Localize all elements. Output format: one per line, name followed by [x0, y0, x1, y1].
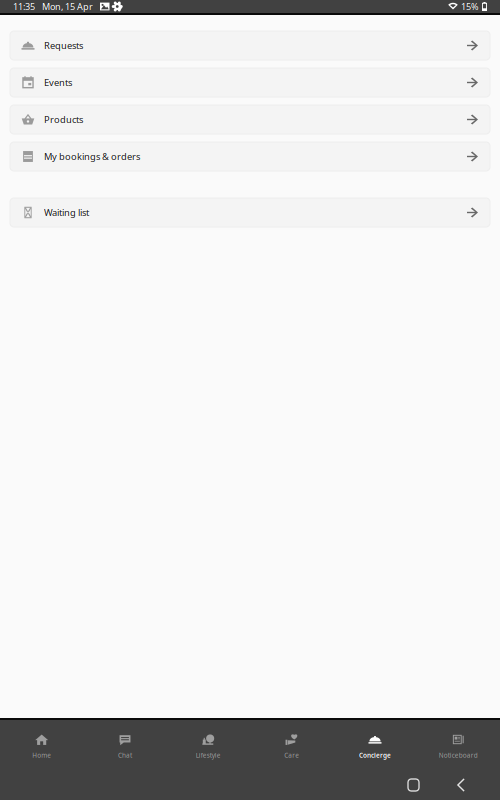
- staticText: Waiting list: [44, 206, 89, 219]
- staticText: Products: [44, 113, 83, 126]
- button[interactable]: Requests: [10, 31, 490, 60]
- staticText: Mon, 15 Apr: [42, 0, 93, 12]
- staticText: My bookings & orders: [44, 150, 140, 163]
- staticText: 11:35: [13, 0, 35, 12]
- button[interactable]: Products: [10, 105, 490, 134]
- button[interactable]: Lifestyle: [167, 720, 250, 768]
- staticText: Chat: [118, 751, 132, 759]
- button[interactable]: Chat: [83, 720, 167, 768]
- staticText: 15%: [461, 0, 479, 12]
- button[interactable]: Home: [0, 720, 83, 768]
- staticText: Events: [44, 76, 72, 89]
- button[interactable]: Care: [250, 720, 333, 768]
- staticText: Noticeboard: [439, 751, 478, 759]
- button[interactable]: Back: [447, 769, 474, 800]
- button[interactable]: Events: [10, 68, 490, 97]
- button[interactable]: Home: [399, 770, 428, 800]
- staticText: Home: [32, 751, 51, 759]
- button[interactable]: Waiting list: [10, 198, 490, 227]
- button[interactable]: My bookings & orders: [10, 142, 490, 171]
- staticText: Concierge: [359, 751, 391, 759]
- staticText: Lifestyle: [196, 751, 221, 759]
- button[interactable]: Noticeboard: [417, 720, 500, 768]
- staticText: Requests: [44, 39, 83, 52]
- staticText: Care: [284, 751, 299, 759]
- button[interactable]: Concierge: [333, 720, 417, 768]
